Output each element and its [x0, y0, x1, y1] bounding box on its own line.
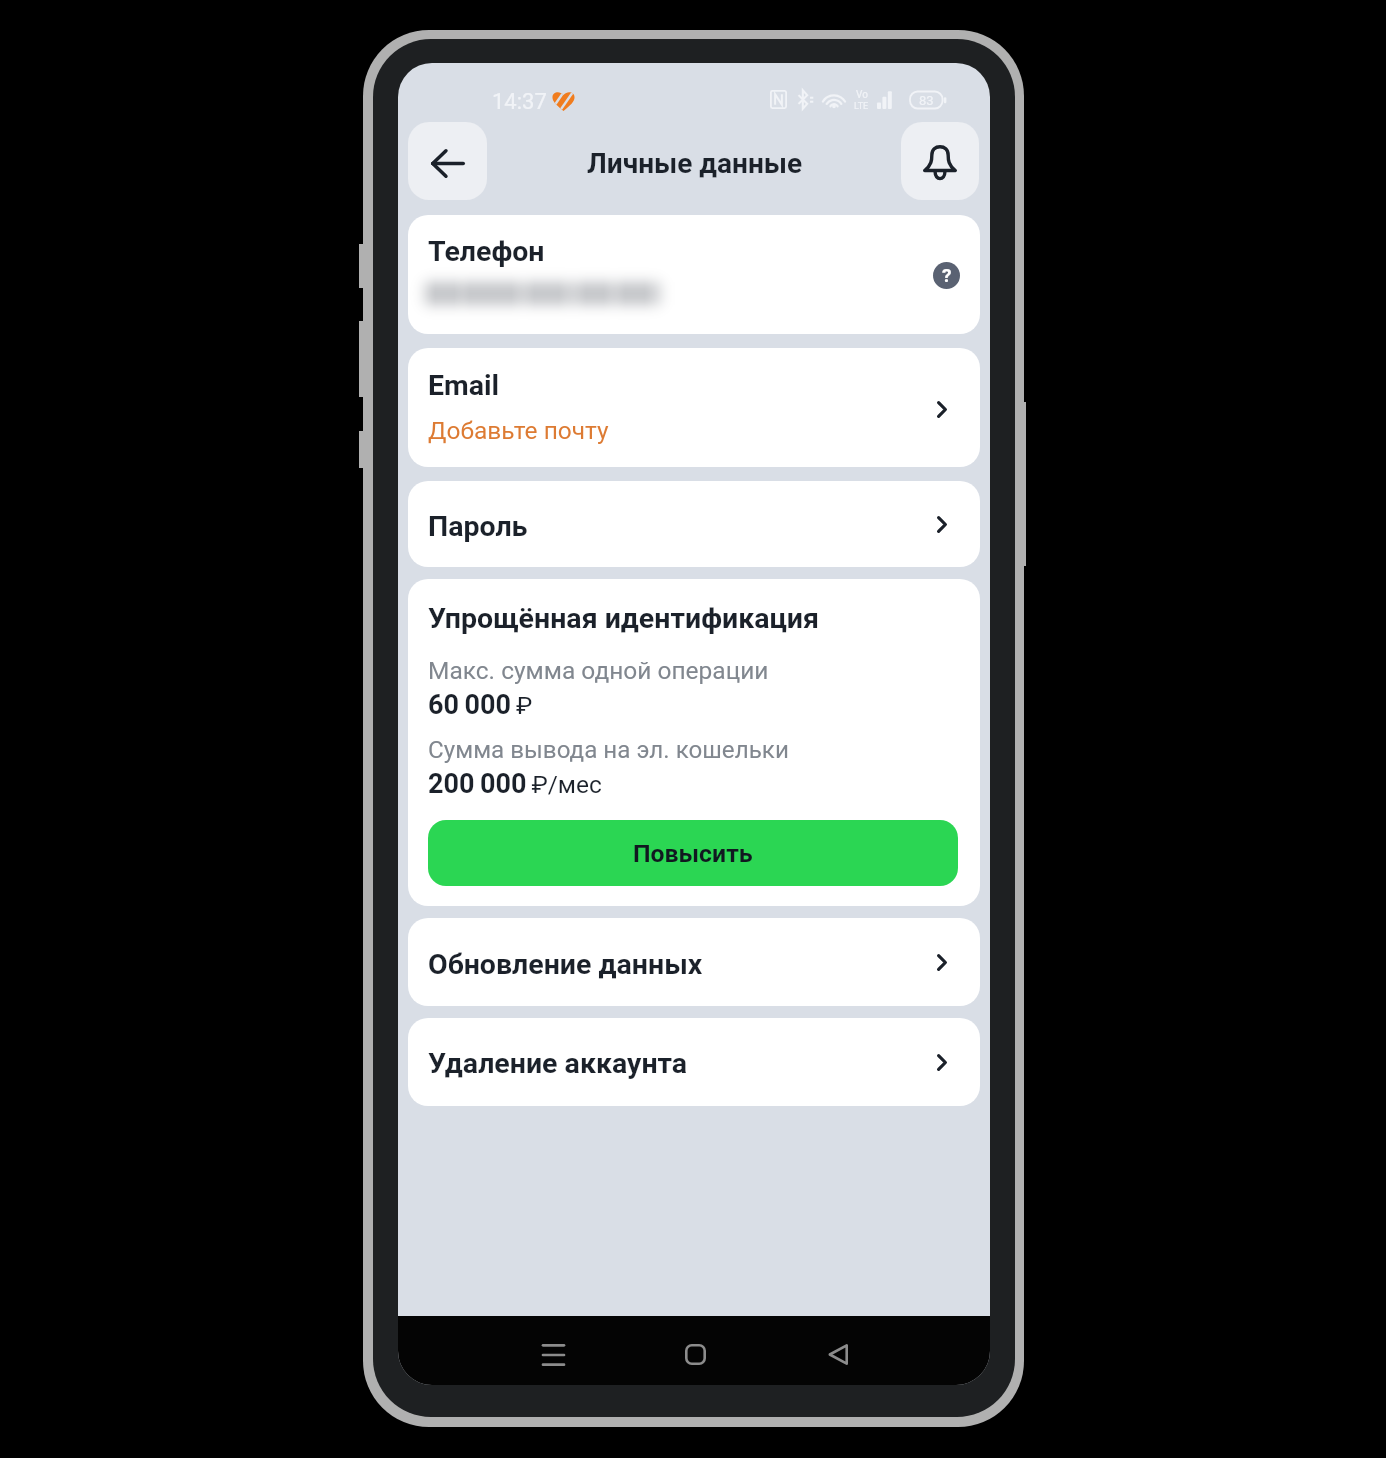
button[interactable]: Повысить	[428, 820, 958, 886]
staticText: 200 000 ₽/мес	[428, 768, 602, 800]
staticText: Телефон	[428, 235, 545, 268]
button[interactable]: Notifications	[901, 122, 979, 200]
button[interactable]: Обновление данных	[408, 918, 980, 1006]
staticText: 14:37	[492, 89, 547, 115]
button[interactable]: Телефон	[408, 215, 980, 334]
button[interactable]: Back	[790, 1320, 886, 1385]
staticText: Сумма вывода на эл. кошельки	[428, 736, 789, 764]
staticText: 83	[919, 93, 934, 108]
staticText: Удаление аккаунта	[428, 1047, 688, 1080]
button[interactable]: Пароль	[408, 481, 980, 567]
button[interactable]: Email	[408, 348, 980, 467]
button[interactable]: Упрощённая идентификация	[408, 579, 980, 906]
staticText: Личные данные	[587, 147, 803, 180]
button[interactable]: Recent apps	[505, 1320, 601, 1385]
staticText: ?	[942, 264, 952, 286]
staticText: Vo	[856, 89, 868, 101]
staticText: Повысить	[633, 839, 753, 868]
button[interactable]: Back	[408, 122, 487, 200]
button[interactable]: Удаление аккаунта	[408, 1018, 980, 1106]
staticText: Макс. сумма одной операции	[428, 656, 769, 685]
button[interactable]: Help	[933, 262, 960, 289]
staticText: 60 000 ₽	[428, 689, 533, 721]
staticText: Пароль	[428, 510, 528, 543]
button[interactable]: Home	[647, 1320, 743, 1385]
staticText: Упрощённая идентификация	[428, 602, 819, 635]
staticText: Email	[428, 369, 500, 402]
staticText: Обновление данных	[428, 948, 703, 981]
staticText: Добавьте почту	[428, 416, 609, 445]
staticText: LTE	[854, 101, 869, 112]
